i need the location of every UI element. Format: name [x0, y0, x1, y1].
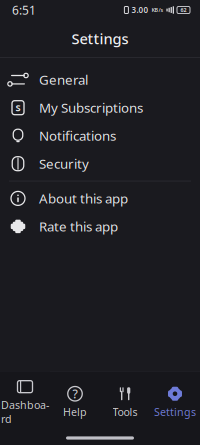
staticText: General [39, 71, 88, 88]
button[interactable]: About this app [0, 184, 200, 212]
staticText: Security [39, 155, 89, 172]
staticText: 62 [180, 6, 186, 14]
button[interactable]: Dashboard [0, 372, 50, 431]
staticText: Rate this app [39, 217, 118, 235]
button[interactable]: S [0, 94, 200, 122]
button[interactable]: Security [0, 150, 200, 178]
staticText: KB/s [151, 6, 163, 14]
staticText: Dashboard [1, 398, 49, 426]
button[interactable]: General [0, 66, 200, 94]
staticText: Tools [112, 405, 137, 419]
button[interactable]: Rate this app [0, 212, 200, 240]
staticText: S [15, 101, 20, 114]
staticText: 3.00 [131, 5, 148, 15]
staticText: Settings [71, 29, 128, 48]
button[interactable]: Settings [150, 379, 200, 424]
button[interactable]: Notifications [0, 122, 200, 150]
staticText: Help [63, 405, 87, 419]
staticText: ? [72, 386, 77, 402]
staticText: My Subscriptions [39, 99, 143, 116]
staticText: Settings [154, 405, 196, 419]
button[interactable]: ? [50, 379, 100, 424]
staticText: 6:51 [12, 2, 36, 18]
staticText: About this app [39, 189, 128, 207]
button[interactable]: Tools [100, 379, 150, 424]
staticText: Notifications [39, 127, 116, 144]
